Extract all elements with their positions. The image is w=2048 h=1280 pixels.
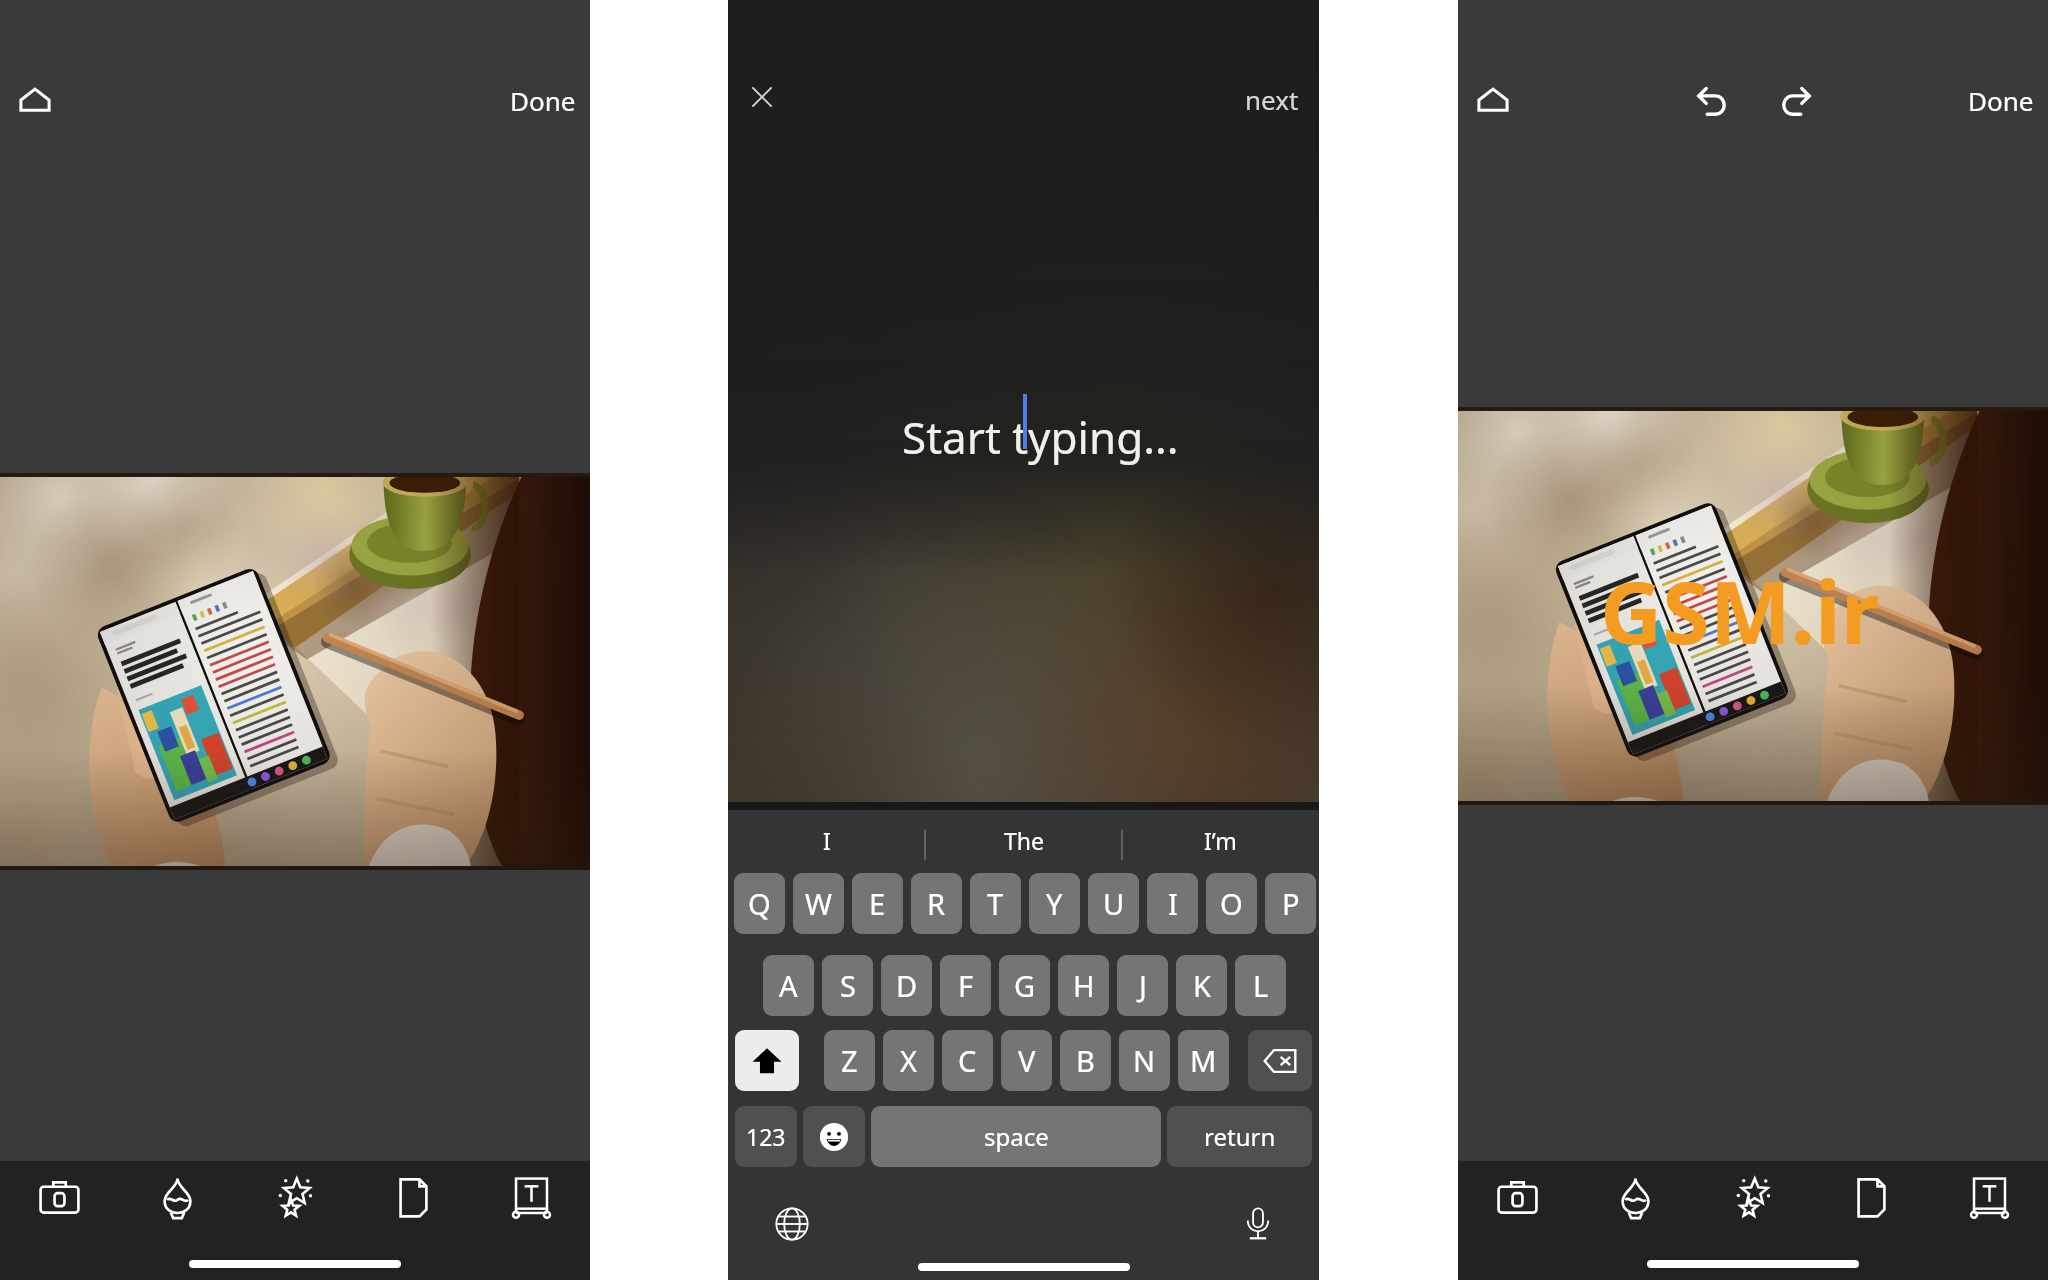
staticText: D xyxy=(896,966,918,1005)
button[interactable]: Voice input xyxy=(1234,1200,1282,1248)
staticText: Z xyxy=(841,1041,858,1080)
staticText: V xyxy=(1018,1041,1036,1080)
staticText: I xyxy=(823,825,831,856)
staticText: space xyxy=(984,1120,1049,1153)
button[interactable]: X xyxy=(883,1030,934,1091)
staticText: I xyxy=(1168,884,1178,923)
staticText: W xyxy=(805,884,832,923)
staticText: U xyxy=(1103,884,1125,923)
button[interactable]: Backspace xyxy=(1248,1030,1312,1091)
button[interactable]: F xyxy=(940,955,991,1016)
staticText: N xyxy=(1133,1041,1156,1080)
button[interactable]: I’m xyxy=(1122,810,1319,870)
staticText: B xyxy=(1076,1041,1095,1080)
staticText: O xyxy=(1220,884,1243,923)
button[interactable]: L xyxy=(1235,955,1286,1016)
staticText: next xyxy=(1245,82,1299,117)
staticText: P xyxy=(1282,884,1300,923)
button[interactable]: Emoji xyxy=(803,1106,865,1167)
button[interactable]: U xyxy=(1088,873,1139,934)
staticText: Y xyxy=(1046,884,1063,923)
staticText: C xyxy=(958,1041,977,1080)
staticText: I’m xyxy=(1204,825,1237,856)
staticText: L xyxy=(1253,966,1269,1005)
button[interactable]: B xyxy=(1060,1030,1111,1091)
button[interactable]: return xyxy=(1167,1106,1312,1167)
staticText: K xyxy=(1193,966,1211,1005)
button[interactable]: Text xyxy=(502,1168,560,1226)
staticText: X xyxy=(900,1041,917,1080)
button[interactable]: D xyxy=(881,955,932,1016)
staticText: Done xyxy=(1968,83,2034,118)
button[interactable]: Done xyxy=(1961,77,2041,123)
staticText: S xyxy=(840,966,856,1005)
button[interactable]: The xyxy=(925,810,1122,870)
staticText: A xyxy=(779,966,798,1005)
button[interactable]: Effects xyxy=(1723,1168,1781,1226)
button[interactable]: Tools xyxy=(30,1168,88,1226)
button[interactable]: space xyxy=(871,1106,1161,1167)
button[interactable]: E xyxy=(852,873,903,934)
button[interactable]: 123 xyxy=(735,1106,797,1167)
staticText: M xyxy=(1190,1041,1217,1080)
staticText: GSM.ir xyxy=(1600,552,1880,669)
button[interactable]: G xyxy=(999,955,1050,1016)
staticText: G xyxy=(1014,966,1036,1005)
staticText: R xyxy=(927,884,946,923)
button[interactable]: Pages xyxy=(1842,1168,1900,1226)
button[interactable]: Pages xyxy=(384,1168,442,1226)
button[interactable]: I xyxy=(728,810,925,870)
button[interactable]: Undo xyxy=(1689,76,1737,124)
button[interactable]: M xyxy=(1178,1030,1229,1091)
button[interactable]: I xyxy=(1147,873,1198,934)
button[interactable]: O xyxy=(1206,873,1257,934)
button[interactable]: S xyxy=(822,955,873,1016)
staticText: Start typing... xyxy=(902,407,1179,467)
button[interactable]: next xyxy=(1233,76,1311,122)
button[interactable]: Y xyxy=(1029,873,1080,934)
staticText: return xyxy=(1204,1120,1276,1153)
staticText: The xyxy=(1004,825,1044,856)
button[interactable]: P xyxy=(1265,873,1316,934)
staticText: J xyxy=(1139,966,1147,1005)
button[interactable]: Text xyxy=(1960,1168,2018,1226)
button[interactable]: T xyxy=(970,873,1021,934)
button[interactable]: H xyxy=(1058,955,1109,1016)
button[interactable]: Shift xyxy=(735,1030,799,1091)
button[interactable]: J xyxy=(1117,955,1168,1016)
button[interactable]: W xyxy=(793,873,844,934)
button[interactable]: R xyxy=(911,873,962,934)
button[interactable]: Effects xyxy=(265,1168,323,1226)
staticText: E xyxy=(869,884,886,923)
button[interactable]: Home xyxy=(1469,76,1517,124)
button[interactable]: V xyxy=(1001,1030,1052,1091)
button[interactable]: Home xyxy=(11,76,59,124)
staticText: H xyxy=(1073,966,1095,1005)
button[interactable]: A xyxy=(763,955,814,1016)
button[interactable]: Change keyboard xyxy=(768,1200,816,1248)
button[interactable]: Redo xyxy=(1771,76,1819,124)
staticText: Q xyxy=(748,884,771,923)
staticText: 123 xyxy=(746,1121,786,1152)
button[interactable]: C xyxy=(942,1030,993,1091)
staticText: Done xyxy=(510,83,576,118)
button[interactable]: Q xyxy=(734,873,785,934)
button[interactable]: N xyxy=(1119,1030,1170,1091)
staticText: T xyxy=(987,884,1004,923)
staticText: F xyxy=(958,966,974,1005)
button[interactable]: Close xyxy=(738,73,786,121)
button[interactable]: Brush xyxy=(1606,1168,1664,1226)
button[interactable]: Tools xyxy=(1488,1168,1546,1226)
button[interactable]: Done xyxy=(503,77,583,123)
button[interactable]: K xyxy=(1176,955,1227,1016)
button[interactable]: Brush xyxy=(148,1168,206,1226)
button[interactable]: Z xyxy=(824,1030,875,1091)
